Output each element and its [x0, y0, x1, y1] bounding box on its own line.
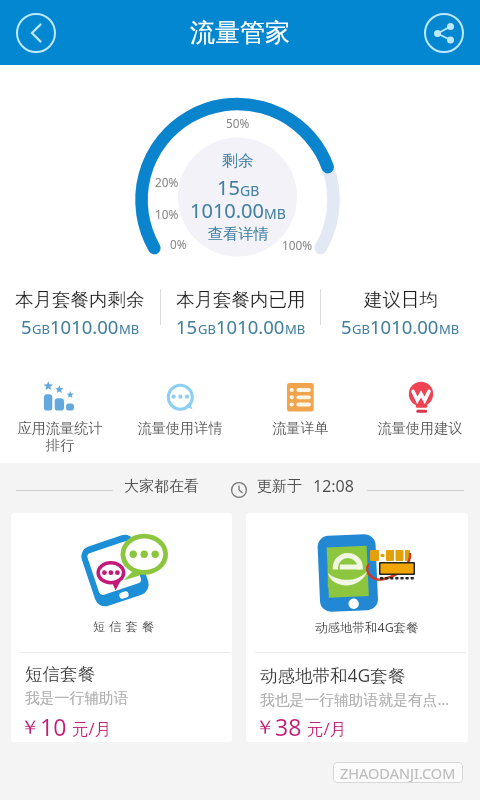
- staticText: GB: [198, 320, 216, 338]
- staticText: 1010.00: [190, 197, 264, 224]
- staticText: 1010.00: [370, 314, 439, 339]
- staticText: 剩余: [222, 151, 254, 171]
- staticText: 20%: [155, 174, 179, 190]
- staticText: 动感地带和4G套餐: [260, 663, 406, 687]
- staticText: 10: [40, 711, 67, 742]
- staticText: GB: [32, 320, 50, 338]
- staticText: 1010.00: [216, 314, 285, 339]
- staticText: 元/月: [307, 717, 347, 740]
- button[interactable]: 动感地带和4G套餐: [246, 513, 468, 742]
- staticText: 0%: [170, 236, 187, 252]
- button[interactable]: 本月套餐内剩余: [0, 265, 160, 349]
- staticText: 本月套餐内已用: [176, 288, 306, 311]
- button[interactable]: 流量详单: [240, 349, 360, 463]
- staticText: ZHAODANJI.COM: [340, 763, 456, 783]
- staticText: ￥: [255, 715, 275, 740]
- staticText: 流量详单: [272, 419, 329, 437]
- staticText: ￥: [20, 715, 40, 740]
- staticText: 动感地带和4G套餐: [315, 619, 419, 636]
- button[interactable]: 流量使用建议: [360, 349, 480, 463]
- staticText: 12:08: [313, 475, 354, 497]
- staticText: 我也是一行辅助语就是有点…: [260, 689, 450, 709]
- staticText: 100%: [282, 237, 313, 253]
- staticText: 10%: [155, 206, 179, 222]
- staticText: 15: [217, 174, 240, 201]
- button[interactable]: 本月套餐内已用: [161, 265, 320, 349]
- button[interactable]: 应用流量统计 排行: [0, 349, 120, 463]
- staticText: 5: [341, 314, 352, 339]
- staticText: 大家都在看: [124, 477, 199, 496]
- staticText: 1010.00: [50, 314, 119, 339]
- staticText: 流量使用建议: [377, 419, 463, 437]
- staticText: 15: [176, 314, 198, 339]
- staticText: GB: [240, 181, 260, 200]
- staticText: 应用流量统计 排行: [17, 419, 103, 454]
- button[interactable]: 查看详情: [208, 224, 269, 243]
- button[interactable]: Share: [422, 11, 466, 55]
- staticText: 流量管家: [190, 17, 290, 48]
- staticText: 更新于: [257, 477, 302, 496]
- button[interactable]: 短信套餐: [11, 513, 232, 742]
- staticText: 短信套餐: [25, 663, 95, 685]
- button[interactable]: Back: [14, 11, 58, 55]
- button[interactable]: 建议日均: [321, 265, 480, 349]
- staticText: 5: [21, 314, 32, 339]
- staticText: MB: [285, 320, 306, 338]
- staticText: 短信套餐: [93, 619, 159, 635]
- staticText: 50%: [226, 115, 250, 131]
- staticText: 本月套餐内剩余: [15, 288, 145, 311]
- staticText: MB: [264, 204, 286, 223]
- staticText: 流量使用详情: [137, 419, 223, 437]
- staticText: GB: [352, 320, 370, 338]
- staticText: 我是一行辅助语: [25, 689, 129, 708]
- button[interactable]: 流量使用详情: [120, 349, 240, 463]
- staticText: 建议日均: [364, 288, 438, 311]
- staticText: MB: [119, 320, 140, 338]
- staticText: 38: [275, 711, 302, 742]
- staticText: MB: [439, 320, 460, 338]
- staticText: 元/月: [72, 717, 112, 740]
